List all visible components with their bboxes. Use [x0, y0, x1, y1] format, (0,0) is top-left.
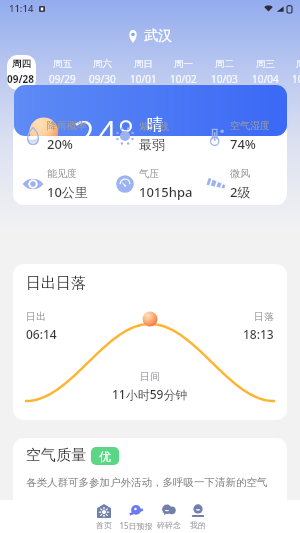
button[interactable]: 周日 — [123, 54, 163, 90]
staticText: 24° — [73, 107, 135, 136]
staticText: 74% — [230, 135, 256, 153]
button[interactable]: 气压 — [105, 166, 196, 202]
button[interactable]: 碎碎念 — [154, 500, 183, 533]
button[interactable]: 周六 — [82, 54, 122, 90]
staticText: 气压 — [139, 167, 159, 180]
staticText: 优 — [99, 449, 111, 464]
button[interactable]: 微风 — [196, 166, 287, 202]
staticText: 18:13 — [243, 326, 274, 342]
button[interactable]: 我的 — [183, 500, 212, 533]
staticText: 日落 — [254, 310, 274, 323]
staticText: 周一 — [174, 58, 193, 70]
staticText: 10/05 — [292, 72, 300, 86]
staticText: 各类人群可多参加户外活动，多呼吸一下清新的空气 — [26, 476, 268, 489]
staticText: 周日 — [134, 58, 153, 70]
staticText: 周三 — [256, 58, 275, 70]
button[interactable]: 紫外线 — [105, 118, 196, 154]
staticText: 紫外线 — [139, 120, 169, 133]
staticText: 微风 — [230, 167, 250, 180]
button[interactable]: 周二 — [204, 54, 244, 90]
staticText: 06:14 — [26, 326, 57, 342]
staticText: 2级 — [230, 183, 251, 201]
staticText: 日出日落 — [26, 274, 86, 293]
button[interactable]: 能见度 — [13, 166, 104, 202]
staticText: 周四 — [12, 58, 31, 70]
staticText: 降雨概率 — [47, 119, 87, 132]
staticText: 15日预报 — [119, 520, 153, 531]
button[interactable]: 周三 — [245, 54, 285, 90]
staticText: 10/03 — [211, 72, 238, 86]
staticText: 空气湿度 — [230, 119, 270, 132]
staticText: 10/01 — [130, 72, 157, 86]
staticText: 最弱 — [139, 136, 165, 152]
staticText: 首页 — [96, 520, 112, 530]
staticText: 11小时59分钟 — [112, 386, 188, 402]
button[interactable]: 周一 — [163, 54, 203, 90]
staticText: 武汉 — [144, 27, 172, 45]
staticText: 09/29 — [49, 72, 76, 86]
staticText: 周六 — [93, 58, 112, 70]
staticText: 20% — [47, 135, 73, 153]
staticText: 周四 — [296, 58, 300, 70]
button[interactable]: 首页 — [89, 500, 118, 533]
staticText: 09/28 — [7, 72, 35, 86]
staticText: 我的 — [190, 520, 206, 530]
staticText: 碎碎念 — [157, 520, 181, 530]
button[interactable]: 降雨概率 — [13, 118, 104, 154]
staticText: 空气质量 — [26, 446, 86, 465]
button[interactable]: 周四 — [1, 54, 41, 90]
staticText: 周五 — [53, 58, 72, 70]
staticText: 10/02 — [170, 72, 197, 86]
button[interactable]: 15日预报 — [118, 500, 154, 533]
staticText: 日出 — [26, 310, 46, 323]
staticText: 日间 — [140, 370, 160, 383]
button[interactable]: 空气湿度 — [196, 118, 287, 154]
staticText: 能见度 — [47, 167, 77, 180]
button[interactable]: 周四 — [285, 54, 300, 90]
button[interactable]: 周五 — [42, 54, 82, 90]
staticText: 晴 — [147, 115, 163, 135]
staticText: 11:14 — [9, 2, 34, 15]
staticText: 周二 — [215, 58, 234, 70]
staticText: 09/30 — [89, 72, 116, 86]
staticText: 1015hpa — [139, 183, 193, 201]
staticText: 10公里 — [47, 183, 88, 201]
staticText: 10/04 — [252, 72, 279, 86]
